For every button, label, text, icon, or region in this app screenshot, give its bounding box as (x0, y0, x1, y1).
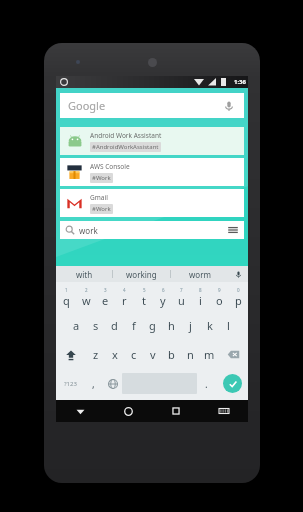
button[interactable]: Search (216, 369, 248, 398)
staticText: 9 (218, 287, 221, 293)
button[interactable]: s (86, 311, 105, 340)
button[interactable]: Android Work Assistant (60, 127, 244, 155)
staticText: Gmail (90, 193, 108, 202)
button[interactable]: 6 (153, 283, 172, 311)
staticText: v (150, 347, 156, 362)
button[interactable]: worm (171, 266, 228, 282)
button[interactable]: c (124, 340, 143, 369)
button[interactable]: v (143, 340, 162, 369)
button[interactable]: AWS Console (60, 158, 244, 186)
button[interactable]: z (86, 340, 105, 369)
staticText: ?123 (64, 380, 77, 388)
staticText: 7 (180, 287, 183, 293)
other: Voice search (222, 99, 236, 113)
button[interactable]: 7 (172, 283, 191, 311)
staticText: 6 (162, 287, 165, 293)
button[interactable]: 4 (115, 283, 134, 311)
staticText: n (187, 347, 194, 362)
button[interactable]: 5 (134, 283, 153, 311)
staticText: u (178, 293, 185, 308)
other: Menu (227, 224, 239, 236)
staticText: #Work (92, 205, 111, 213)
button[interactable]: Shift (56, 340, 86, 369)
button[interactable]: Google (60, 93, 244, 118)
staticText: a (73, 318, 80, 333)
staticText: c (131, 347, 137, 362)
button[interactable]: d (105, 311, 124, 340)
staticText: Android Work Assistant (90, 131, 162, 140)
staticText: #Work (92, 174, 111, 182)
button[interactable]: 1 (56, 283, 76, 311)
staticText: g (149, 318, 156, 333)
button[interactable]: a (67, 311, 86, 340)
staticText: s (93, 318, 99, 333)
staticText: x (112, 347, 118, 362)
staticText: working (126, 269, 157, 280)
staticText: 3 (104, 287, 107, 293)
button[interactable]: working (113, 266, 170, 282)
staticText: y (160, 293, 166, 308)
button[interactable]: n (181, 340, 200, 369)
staticText: e (102, 293, 109, 308)
button[interactable]: h (162, 311, 181, 340)
button[interactable]: Gmail (60, 189, 244, 217)
staticText: b (168, 347, 175, 362)
staticText: d (111, 318, 118, 333)
button[interactable]: 0 (229, 283, 248, 311)
button[interactable]: with (56, 266, 112, 282)
button[interactable]: , (84, 369, 103, 398)
button[interactable]: 3 (96, 283, 115, 311)
staticText: m (204, 347, 215, 362)
staticText: r (122, 293, 127, 308)
staticText: f (132, 318, 136, 333)
staticText: 2 (85, 287, 88, 293)
button[interactable]: b (162, 340, 181, 369)
button[interactable]: m (200, 340, 219, 369)
staticText: 5 (143, 287, 146, 293)
staticText: , (92, 377, 95, 391)
button[interactable]: l (219, 311, 238, 340)
staticText: j (189, 318, 192, 333)
staticText: 1 (65, 287, 68, 293)
button[interactable]: Back (56, 400, 104, 422)
staticText: h (168, 318, 175, 333)
staticText: z (93, 347, 99, 362)
button[interactable]: x (105, 340, 124, 369)
button[interactable]: Switch keyboard (200, 400, 248, 422)
staticText: work (79, 225, 98, 236)
button[interactable]: Voice input (228, 266, 248, 282)
button[interactable]: g (143, 311, 162, 340)
button[interactable]: 8 (191, 283, 210, 311)
button[interactable]: Home (104, 400, 152, 422)
button[interactable]: 9 (210, 283, 229, 311)
staticText: q (63, 293, 70, 308)
staticText: o (216, 293, 223, 308)
staticText: 4 (123, 287, 126, 293)
staticText: p (235, 293, 242, 308)
button[interactable]: j (181, 311, 200, 340)
staticText: with (76, 269, 93, 280)
staticText: 0 (237, 287, 240, 293)
staticText: l (227, 318, 230, 333)
staticText: k (207, 318, 213, 333)
staticText: worm (189, 269, 211, 280)
staticText: t (142, 293, 146, 308)
staticText: Google (68, 98, 106, 113)
staticText: #AndroidWorkAssistant (92, 143, 159, 151)
button[interactable]: ?123 (56, 369, 84, 398)
staticText: 8 (199, 287, 202, 293)
button[interactable]: 2 (76, 283, 96, 311)
button[interactable]: . (197, 369, 216, 398)
button[interactable]: f (124, 311, 143, 340)
staticText: 1:36 (234, 78, 246, 86)
staticText: w (82, 293, 91, 308)
staticText: i (199, 293, 202, 308)
staticText: . (205, 377, 208, 391)
button[interactable]: Backspace (219, 340, 248, 369)
button[interactable]: Change language (103, 369, 122, 398)
button[interactable]: Recents (152, 400, 200, 422)
button[interactable]: work (60, 221, 244, 239)
staticText: AWS Console (90, 162, 130, 171)
button[interactable]: k (200, 311, 219, 340)
